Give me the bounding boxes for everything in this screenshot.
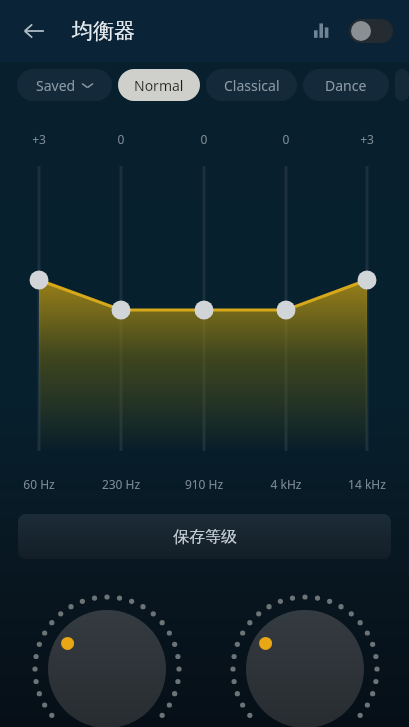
button[interactable]: Dance bbox=[303, 69, 389, 101]
button[interactable]: 保存等级 bbox=[18, 514, 391, 559]
staticText: 14 kHz bbox=[335, 476, 399, 492]
button[interactable] bbox=[395, 69, 409, 101]
button[interactable]: Normal bbox=[118, 69, 200, 101]
staticText: Classical bbox=[224, 76, 280, 95]
staticText: Dance bbox=[325, 76, 367, 95]
staticText: Normal bbox=[134, 76, 184, 95]
button[interactable]: Classical bbox=[206, 69, 297, 101]
staticText: 230 Hz bbox=[89, 476, 153, 492]
staticText: 保存等级 bbox=[173, 527, 237, 547]
button[interactable]: Enable equalizer bbox=[349, 19, 393, 43]
button[interactable]: Virtualizer knob bbox=[246, 610, 364, 727]
staticText: 0 bbox=[101, 131, 141, 147]
button[interactable]: Saved bbox=[17, 69, 112, 101]
staticText: +3 bbox=[347, 131, 387, 147]
staticText: 4 kHz bbox=[254, 476, 318, 492]
staticText: +3 bbox=[19, 131, 59, 147]
staticText: 均衡器 bbox=[72, 18, 135, 44]
staticText: 60 Hz bbox=[7, 476, 71, 492]
button[interactable]: Bass knob bbox=[48, 610, 166, 727]
button[interactable]: Visualizer bbox=[305, 13, 341, 49]
button[interactable]: Back bbox=[12, 9, 56, 53]
staticText: 0 bbox=[266, 131, 306, 147]
staticText: Saved bbox=[36, 76, 76, 95]
staticText: 0 bbox=[184, 131, 224, 147]
staticText: 910 Hz bbox=[172, 476, 236, 492]
